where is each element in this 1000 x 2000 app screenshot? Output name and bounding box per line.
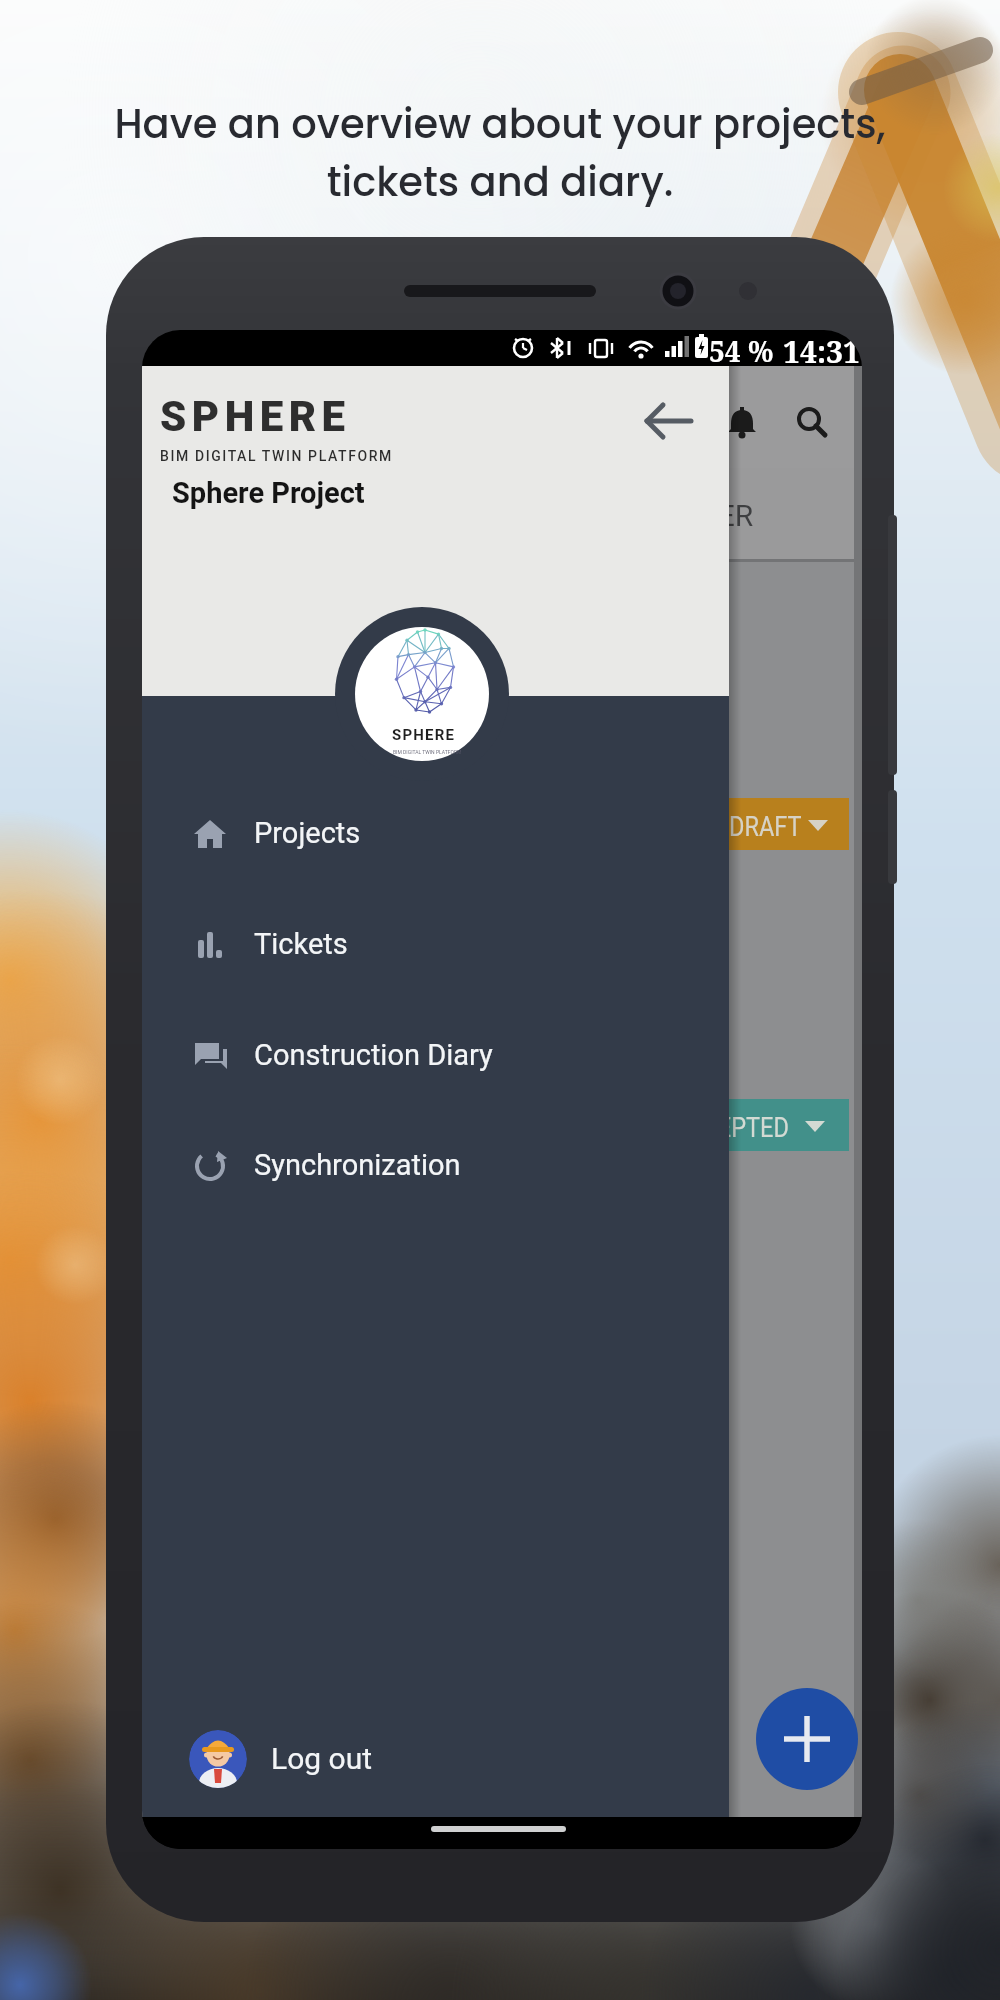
staticText: Synchronization: [254, 1148, 461, 1182]
button[interactable]: [794, 404, 830, 440]
button[interactable]: Log out: [172, 1724, 512, 1794]
button[interactable]: Construction Diary: [172, 1023, 612, 1089]
button[interactable]: [645, 397, 693, 445]
staticText: Tickets: [254, 927, 348, 961]
button[interactable]: Projects: [172, 801, 612, 867]
staticText: tickets and diary.: [0, 154, 1000, 210]
button[interactable]: Synchronization: [172, 1133, 612, 1199]
button[interactable]: [756, 1688, 858, 1790]
button[interactable]: Tickets: [172, 912, 612, 978]
staticText: Log out: [271, 1741, 373, 1776]
staticText: 54 %: [709, 332, 774, 370]
staticText: SPHERE: [392, 726, 456, 744]
staticText: Have an overview about your projects,: [0, 96, 1000, 152]
staticText: ACCEPTED: [672, 1111, 790, 1144]
button[interactable]: [724, 404, 760, 440]
staticText: Projects: [254, 816, 361, 850]
staticText: Sphere Project: [172, 476, 365, 510]
staticText: DRAFT: [729, 810, 802, 843]
staticText: 14:31: [783, 331, 860, 372]
staticText: BIM DIGITAL TWIN PLATFORM: [393, 749, 462, 755]
staticText: SPHERE: [160, 392, 351, 441]
button[interactable]: [572, 1099, 849, 1151]
button[interactable]: [572, 798, 849, 850]
staticText: Construction Diary: [254, 1038, 493, 1072]
staticText: FILTER: [663, 498, 754, 533]
staticText: BIM DIGITAL TWIN PLATFORM: [160, 448, 393, 464]
